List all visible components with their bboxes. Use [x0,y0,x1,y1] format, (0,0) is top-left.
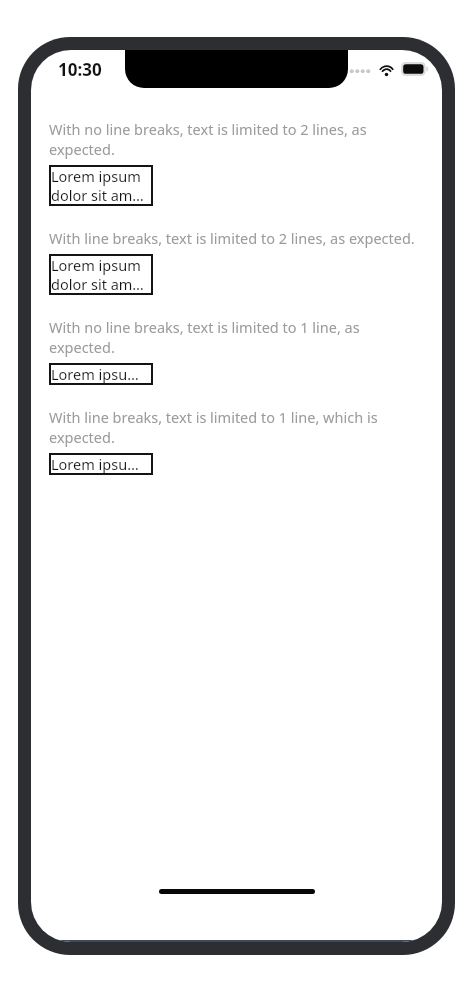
staticText: Lorem ipsum dolor sit ame… [51,255,151,294]
button[interactable]: Lorem ipsum… [49,363,153,385]
staticText: With line breaks, text is limited to 1 l… [49,407,424,447]
button[interactable]: Lorem ipsum dolor sit ame… [49,165,153,206]
button[interactable]: Lorem ipsum… [49,453,153,475]
button[interactable]: Lorem ipsum dolor sit ame… [49,254,153,295]
staticText: With no line breaks, text is limited to … [49,119,424,159]
staticText: Lorem ipsum… [51,454,151,474]
other: Home [159,889,315,894]
staticText: Lorem ipsum… [51,364,151,384]
staticText: With line breaks, text is limited to 2 l… [49,228,415,248]
staticText: Lorem ipsum dolor sit ame… [51,166,151,205]
staticText: 10:30 [58,58,102,81]
staticText: With no line breaks, text is limited to … [49,317,424,357]
